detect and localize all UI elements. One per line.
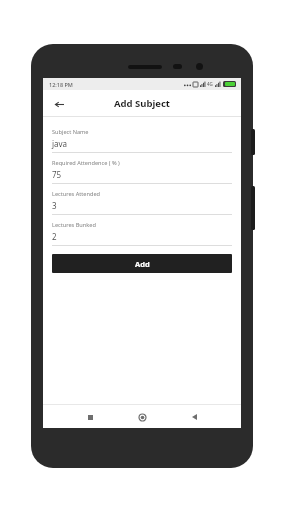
staticText: Required Attendence ( % ) xyxy=(52,159,120,167)
button[interactable]: Back xyxy=(185,408,203,426)
staticText: Add Subject xyxy=(114,97,170,110)
staticText: 12:18 PM xyxy=(49,81,73,88)
button[interactable]: Recent apps xyxy=(81,408,99,426)
button[interactable]: Lectures Attended xyxy=(43,184,241,215)
staticText: 3 xyxy=(52,200,57,211)
button[interactable]: Lectures Bunked xyxy=(43,215,241,246)
staticText: Subject Name xyxy=(52,128,89,136)
button[interactable]: Add xyxy=(52,254,232,273)
staticText: 4G xyxy=(207,81,213,87)
staticText: Lectures Attended xyxy=(52,190,100,198)
staticText: 75 xyxy=(52,169,62,180)
staticText: 2 xyxy=(52,231,57,242)
staticText: java xyxy=(52,138,68,149)
button[interactable]: Back xyxy=(51,96,67,112)
button[interactable]: Required Attendence ( % ) xyxy=(43,153,241,184)
staticText: Add xyxy=(135,259,150,269)
staticText: Lectures Bunked xyxy=(52,221,96,229)
button[interactable]: Home xyxy=(133,408,151,426)
button[interactable]: Subject Name xyxy=(43,122,241,153)
